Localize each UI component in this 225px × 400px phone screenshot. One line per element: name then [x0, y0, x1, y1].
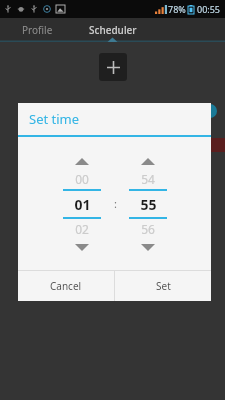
- staticText: 01: [74, 195, 91, 214]
- button[interactable]: Increment: [126, 153, 170, 169]
- button[interactable]: Decrement: [60, 239, 104, 255]
- staticText: 54: [141, 171, 155, 187]
- button[interactable]: Increment: [60, 153, 104, 169]
- button[interactable]: Scheduler: [75, 18, 150, 42]
- staticText: 00: [75, 171, 89, 187]
- staticText: :: [114, 196, 117, 211]
- staticText: Set: [156, 279, 171, 293]
- button[interactable]: Add: [99, 53, 127, 81]
- button[interactable]: Profile: [0, 18, 75, 42]
- staticText: Profile: [22, 23, 53, 37]
- staticText: 00:55: [197, 3, 221, 15]
- button[interactable]: Set: [115, 271, 211, 301]
- button[interactable]: 01: [60, 191, 104, 217]
- button[interactable]: Cancel: [18, 271, 114, 301]
- staticText: 02: [75, 221, 89, 237]
- staticText: 56: [141, 221, 155, 237]
- staticText: 78%: [168, 3, 186, 15]
- staticText: Cancel: [50, 279, 82, 293]
- button[interactable]: [150, 18, 225, 42]
- button[interactable]: 55: [126, 191, 170, 217]
- button[interactable]: Decrement: [126, 239, 170, 255]
- staticText: Scheduler: [89, 23, 137, 37]
- staticText: Set time: [29, 110, 80, 128]
- staticText: 55: [140, 195, 157, 214]
